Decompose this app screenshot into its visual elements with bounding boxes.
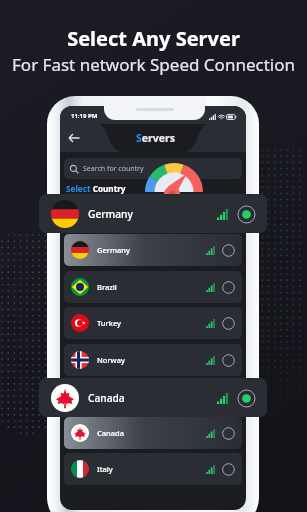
staticText: Turkey [97,318,122,328]
button[interactable]: Canada [64,380,242,412]
button[interactable]: Canada [64,417,242,449]
staticText: For Fast network Speed Connection [0,53,307,76]
button[interactable]: Back [64,128,84,148]
staticText: Brazil [97,282,117,292]
staticText: Germany [97,245,130,255]
button[interactable]: Brazil [64,271,242,303]
button[interactable]: Germany [64,234,242,266]
staticText: Italy [97,464,113,474]
staticText: Canada [88,391,125,405]
staticText: 11:19 PM [71,112,98,120]
button[interactable]: Italy [64,453,242,485]
button[interactable]: Germany [39,194,267,233]
staticText: Select Country [66,183,126,194]
staticText: Canada [97,428,124,438]
staticText: Search for country [83,164,144,174]
staticText: Servers [136,131,175,145]
button[interactable]: Search for country [64,158,242,179]
staticText: Select Any Server [0,25,307,52]
staticText: Canada [97,391,124,401]
staticText: Norway [97,355,125,365]
button[interactable]: Canada [39,378,267,417]
button[interactable]: Norway [64,344,242,376]
button[interactable]: Turkey [64,307,242,339]
staticText: Germany [88,207,133,221]
